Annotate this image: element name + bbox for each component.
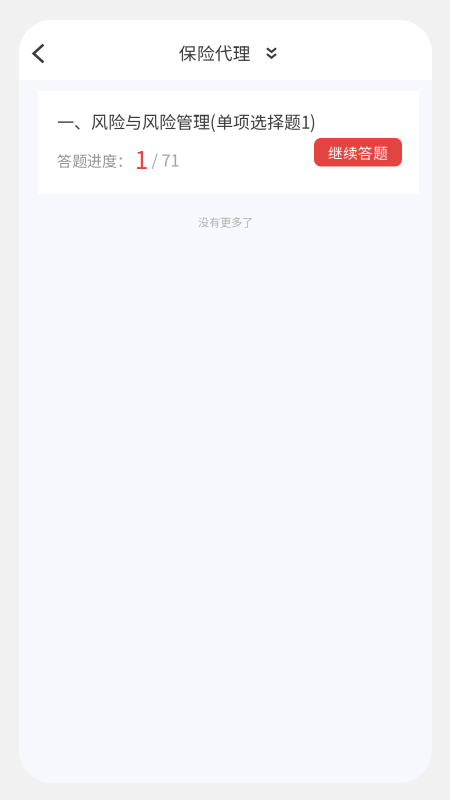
button[interactable]: 一、风险与风险管理(单项选择题1): [38, 91, 419, 194]
staticText: 答题进度：: [57, 149, 132, 171]
staticText: 1: [134, 140, 148, 176]
button[interactable]: 保险代理: [175, 30, 281, 75]
button[interactable]: Back: [19, 24, 63, 76]
button[interactable]: 没有更多了: [188, 211, 263, 233]
staticText: 一、风险与风险管理(单项选择题1): [57, 109, 316, 134]
staticText: 没有更多了: [198, 214, 253, 230]
staticText: / 71: [151, 147, 179, 171]
staticText: 保险代理: [179, 40, 251, 65]
staticText: 继续答题: [328, 141, 388, 163]
